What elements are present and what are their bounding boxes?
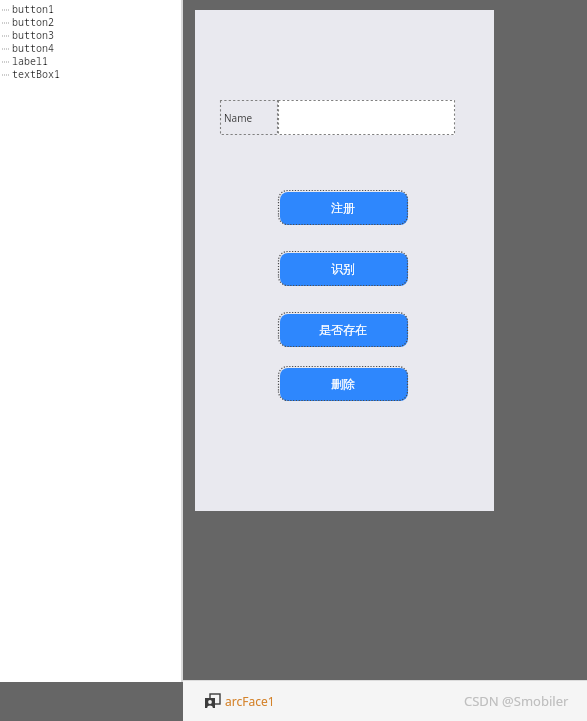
staticText: label1 <box>12 54 48 67</box>
staticText: button4 <box>12 41 54 54</box>
staticText: button2 <box>12 15 54 28</box>
button[interactable]: 注册 <box>278 190 408 225</box>
button[interactable]: Name <box>220 100 278 135</box>
button[interactable]: button1 <box>0 2 183 15</box>
button[interactable]: 是否存在 <box>278 312 408 347</box>
staticText: button3 <box>12 28 54 41</box>
button[interactable]: 删除 <box>278 366 408 401</box>
staticText: CSDN @Smobiler <box>464 692 569 710</box>
button[interactable]: button3 <box>0 28 183 41</box>
staticText: 识别 <box>331 261 355 276</box>
button[interactable]: textBox1 <box>0 67 183 80</box>
other: arcFace component <box>204 693 221 710</box>
staticText: arcFace1 <box>225 693 275 709</box>
button[interactable]: 识别 <box>278 251 408 286</box>
staticText: 删除 <box>331 376 355 391</box>
staticText: Name <box>224 111 253 125</box>
staticText: textBox1 <box>12 67 60 80</box>
button[interactable]: button4 <box>0 41 183 54</box>
button[interactable]: label1 <box>0 54 183 67</box>
button[interactable]: arcFace component <box>204 691 275 711</box>
staticText: 注册 <box>331 200 355 215</box>
staticText: button1 <box>12 2 54 15</box>
staticText: 是否存在 <box>319 322 367 337</box>
button[interactable]: button2 <box>0 15 183 28</box>
button[interactable] <box>278 100 455 135</box>
